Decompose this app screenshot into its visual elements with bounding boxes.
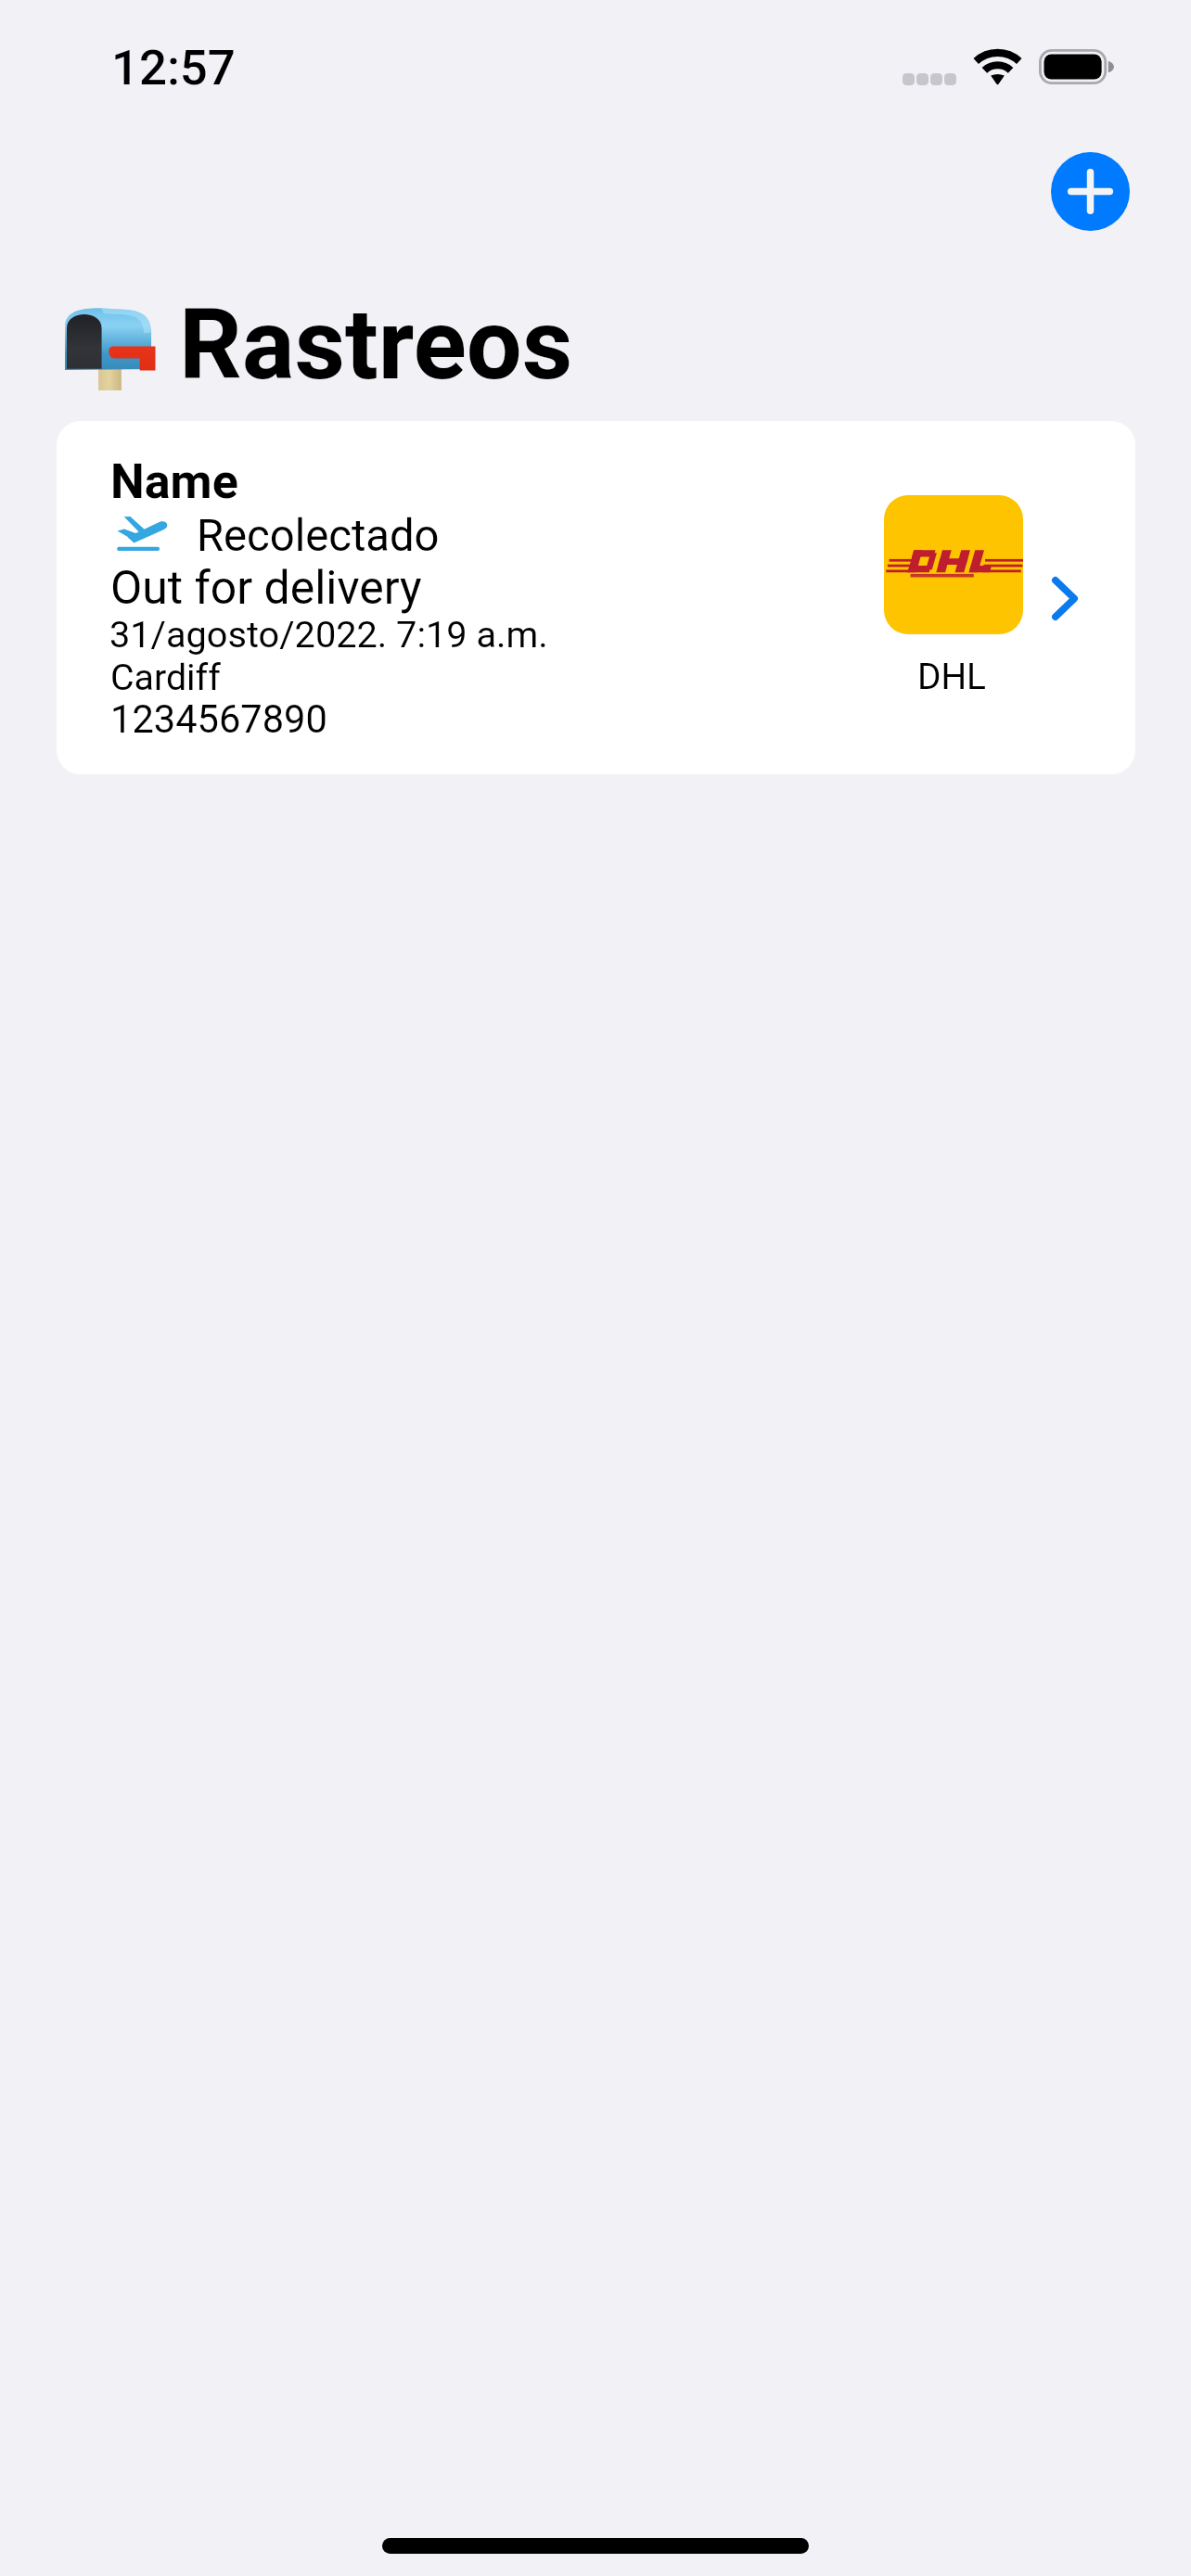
staticText: Out for delivery bbox=[110, 561, 422, 615]
button[interactable]: Add tracking bbox=[1051, 152, 1130, 231]
staticText: Recolectado bbox=[197, 510, 440, 561]
staticText: DHL bbox=[882, 656, 1021, 697]
staticText: 1234567890 bbox=[110, 696, 327, 742]
staticText: Cardiff bbox=[110, 657, 221, 699]
staticText: Rastreos bbox=[179, 287, 573, 402]
staticText: Name bbox=[110, 453, 238, 510]
staticText: 31/agosto/2022. 7:19 a.m. bbox=[109, 613, 548, 657]
button[interactable]: Open tracking details bbox=[1035, 560, 1095, 637]
button[interactable]: Name bbox=[57, 421, 1135, 774]
staticText: 12:57 bbox=[111, 39, 236, 96]
